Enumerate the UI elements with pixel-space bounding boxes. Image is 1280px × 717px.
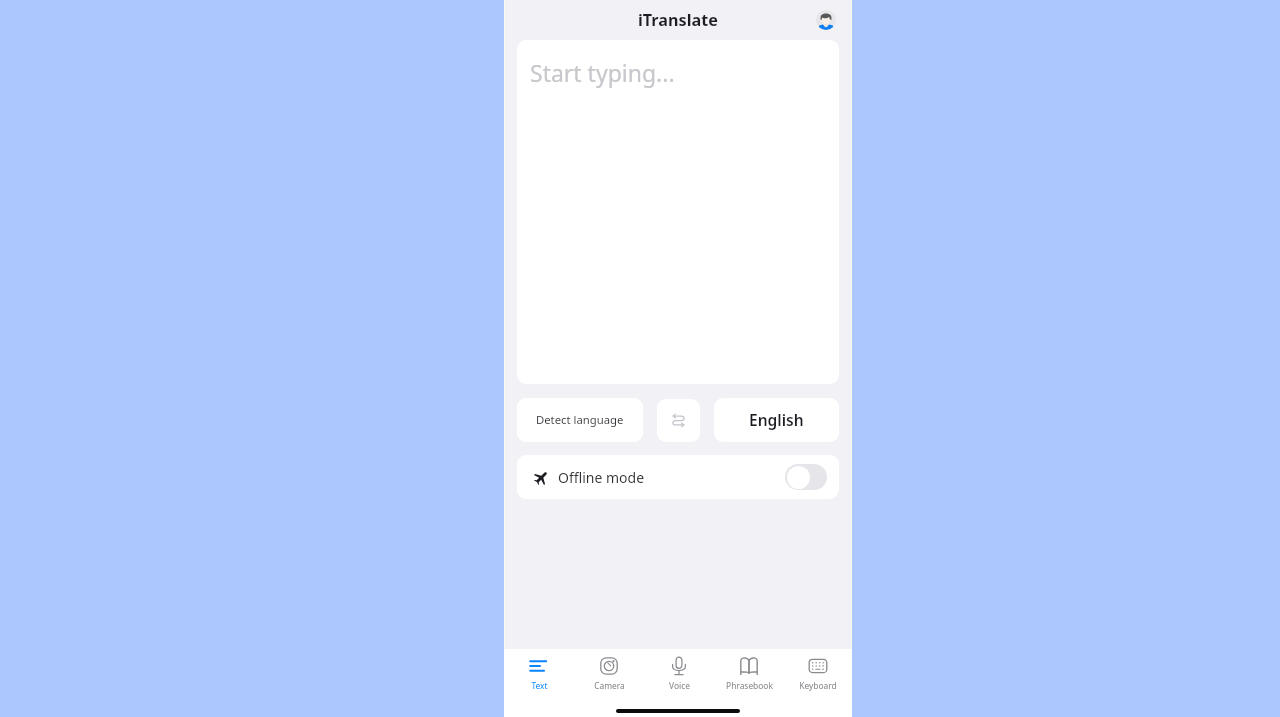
button[interactable]: Phrasebook	[714, 649, 784, 705]
button[interactable]: Detect language	[517, 398, 643, 442]
staticText: Offline mode	[558, 468, 645, 487]
button[interactable]: Offline mode toggle	[785, 464, 827, 490]
button[interactable]: Swap languages	[657, 399, 700, 442]
button[interactable]: Voice	[644, 649, 714, 705]
staticText: iTranslate	[638, 9, 718, 31]
button[interactable]: English	[714, 398, 839, 442]
button[interactable]: Profile	[816, 10, 836, 30]
staticText: Detect language	[536, 412, 624, 427]
button[interactable]: Keyboard	[784, 649, 852, 705]
button[interactable]: Start typing...	[517, 40, 839, 384]
staticText: Voice	[669, 680, 690, 691]
staticText: Start typing...	[530, 57, 675, 88]
staticText: Keyboard	[799, 680, 837, 691]
button[interactable]: Text	[504, 649, 574, 705]
button[interactable]: Camera	[574, 649, 644, 705]
staticText: Phrasebook	[726, 680, 773, 691]
staticText: Camera	[594, 680, 625, 691]
button[interactable]: Offline mode	[517, 455, 839, 499]
staticText: English	[749, 409, 804, 430]
staticText: Text	[531, 680, 548, 691]
